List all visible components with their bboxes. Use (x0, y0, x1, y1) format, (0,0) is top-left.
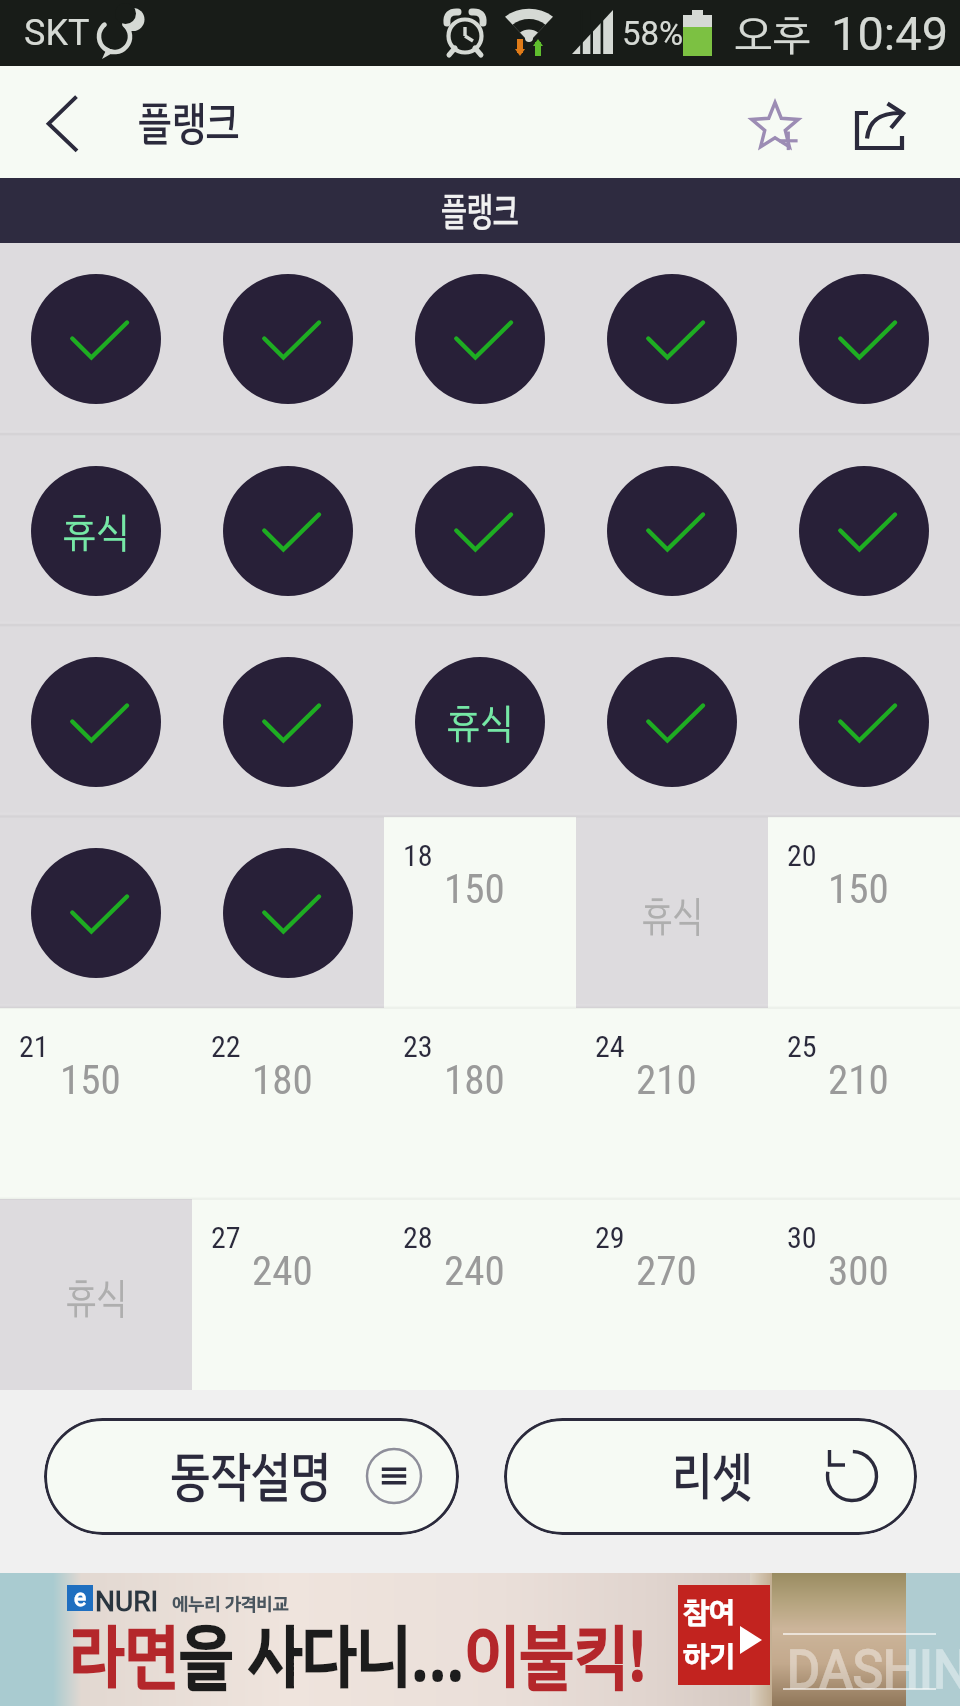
staticText: 150 (828, 865, 889, 913)
staticText: 21 (19, 1029, 49, 1064)
button[interactable]: 20 (768, 817, 960, 1008)
staticText: 참여 (683, 1591, 735, 1635)
button[interactable]: Add to favorites (726, 66, 824, 178)
button[interactable]: 휴식 (384, 626, 576, 817)
button[interactable]: 리셋 (504, 1418, 917, 1535)
staticText: 휴식 (642, 884, 703, 947)
button[interactable]: 23 (384, 1008, 576, 1199)
staticText: 플랭크 (138, 88, 240, 157)
button[interactable]: 28 (384, 1199, 576, 1390)
staticText: 18 (403, 838, 433, 873)
button[interactable] (384, 435, 576, 626)
button[interactable] (768, 435, 960, 626)
staticText: 150 (444, 865, 505, 913)
staticText: NURI (95, 1585, 158, 1618)
staticText: SKT (24, 12, 90, 54)
staticText: 24 (595, 1029, 625, 1064)
staticText: 210 (636, 1056, 697, 1104)
staticText: DASHIN (787, 1638, 960, 1701)
staticText: 25 (787, 1029, 817, 1064)
staticText: 22 (211, 1029, 241, 1064)
button[interactable] (192, 626, 384, 817)
staticText: 58% (622, 14, 684, 53)
staticText: 28 (403, 1220, 433, 1255)
staticText: 휴식 (447, 693, 514, 755)
staticText: 20 (787, 838, 817, 873)
staticText: 300 (828, 1247, 889, 1295)
staticText: 하기 (683, 1635, 735, 1679)
staticText: 23 (403, 1029, 433, 1064)
button[interactable]: Share (838, 66, 936, 178)
button[interactable] (768, 243, 960, 435)
button[interactable]: 휴식 (0, 1199, 192, 1390)
staticText: 29 (595, 1220, 625, 1255)
button[interactable]: 21 (0, 1008, 192, 1199)
button[interactable]: 휴식 (0, 435, 192, 626)
button[interactable] (576, 626, 768, 817)
button[interactable]: 18 (384, 817, 576, 1008)
staticText: 플랭크 (441, 183, 519, 241)
staticText: 150 (60, 1056, 121, 1104)
button[interactable]: Back (0, 66, 110, 178)
button[interactable] (192, 435, 384, 626)
staticText: 270 (636, 1247, 697, 1295)
button[interactable] (384, 243, 576, 435)
button[interactable]: 25 (768, 1008, 960, 1199)
button[interactable]: 22 (192, 1008, 384, 1199)
button[interactable] (768, 626, 960, 817)
staticText: 을 사다니... (179, 1604, 465, 1706)
staticText: 이불킥! (465, 1604, 647, 1706)
staticText: 에누리 가격비교 (172, 1590, 289, 1617)
button[interactable] (576, 243, 768, 435)
button[interactable] (0, 243, 192, 435)
staticText: 리셋 (672, 1436, 753, 1516)
staticText: 180 (444, 1056, 505, 1104)
staticText: 라면 (70, 1604, 179, 1706)
staticText: 240 (444, 1247, 505, 1295)
staticText: 240 (252, 1247, 313, 1295)
button[interactable]: 29 (576, 1199, 768, 1390)
button[interactable] (0, 817, 192, 1008)
button[interactable]: 24 (576, 1008, 768, 1199)
staticText: 180 (252, 1056, 313, 1104)
button[interactable] (192, 243, 384, 435)
button[interactable]: 참여 (678, 1585, 770, 1685)
staticText: e (74, 1585, 87, 1611)
button[interactable]: Advertisement (0, 1573, 960, 1706)
staticText: 210 (828, 1056, 889, 1104)
button[interactable] (192, 817, 384, 1008)
staticText: 오후 (734, 3, 811, 66)
staticText: 30 (787, 1220, 817, 1255)
staticText: 휴식 (63, 502, 130, 564)
staticText: 동작설명 (170, 1436, 331, 1516)
staticText: 휴식 (66, 1266, 127, 1329)
button[interactable]: 동작설명 (44, 1418, 459, 1535)
button[interactable]: 30 (768, 1199, 960, 1390)
button[interactable]: 휴식 (576, 817, 768, 1008)
button[interactable] (576, 435, 768, 626)
button[interactable] (0, 626, 192, 817)
staticText: 10:49 (831, 6, 949, 61)
button[interactable]: 27 (192, 1199, 384, 1390)
staticText: 27 (211, 1220, 241, 1255)
